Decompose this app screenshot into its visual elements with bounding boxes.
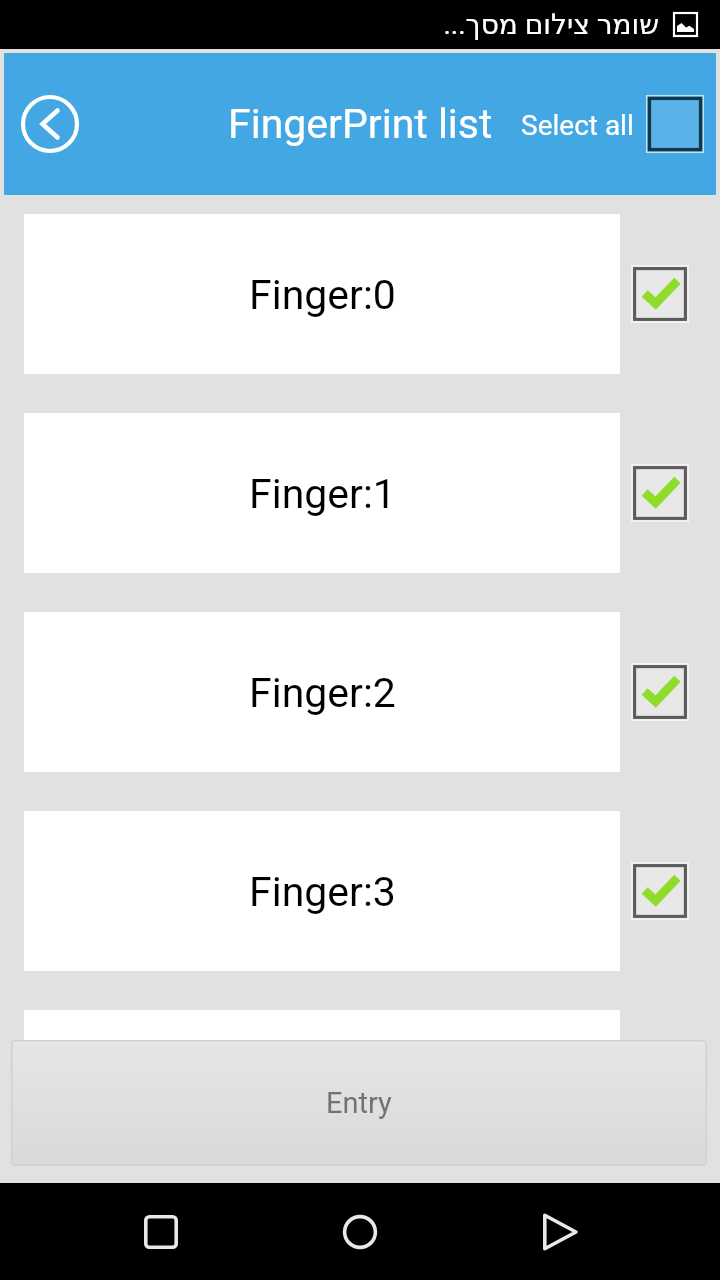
button[interactable]: Finger:4 xyxy=(0,1010,720,1040)
staticText: Entry xyxy=(326,1086,392,1120)
staticText: Finger:0 xyxy=(249,271,396,319)
button[interactable]: Back xyxy=(14,88,86,160)
button[interactable]: Home xyxy=(320,1183,400,1280)
staticText: Finger:2 xyxy=(249,669,396,717)
button[interactable]: Finger:0 xyxy=(0,214,720,374)
button[interactable]: Finger:1 xyxy=(0,413,720,573)
staticText: FingerPrint list xyxy=(228,100,493,148)
button[interactable]: Finger:3 xyxy=(0,811,720,971)
button[interactable]: Select all xyxy=(643,92,707,156)
staticText: Finger:3 xyxy=(249,868,396,916)
button[interactable]: Entry xyxy=(11,1040,707,1166)
staticText: Select all xyxy=(521,109,634,142)
staticText: שומר צילום מסך... xyxy=(443,8,659,41)
button[interactable]: Recent apps xyxy=(120,1183,200,1280)
staticText: Finger:1 xyxy=(249,470,396,518)
button[interactable]: Back xyxy=(520,1183,600,1280)
button[interactable]: Finger:2 xyxy=(0,612,720,772)
